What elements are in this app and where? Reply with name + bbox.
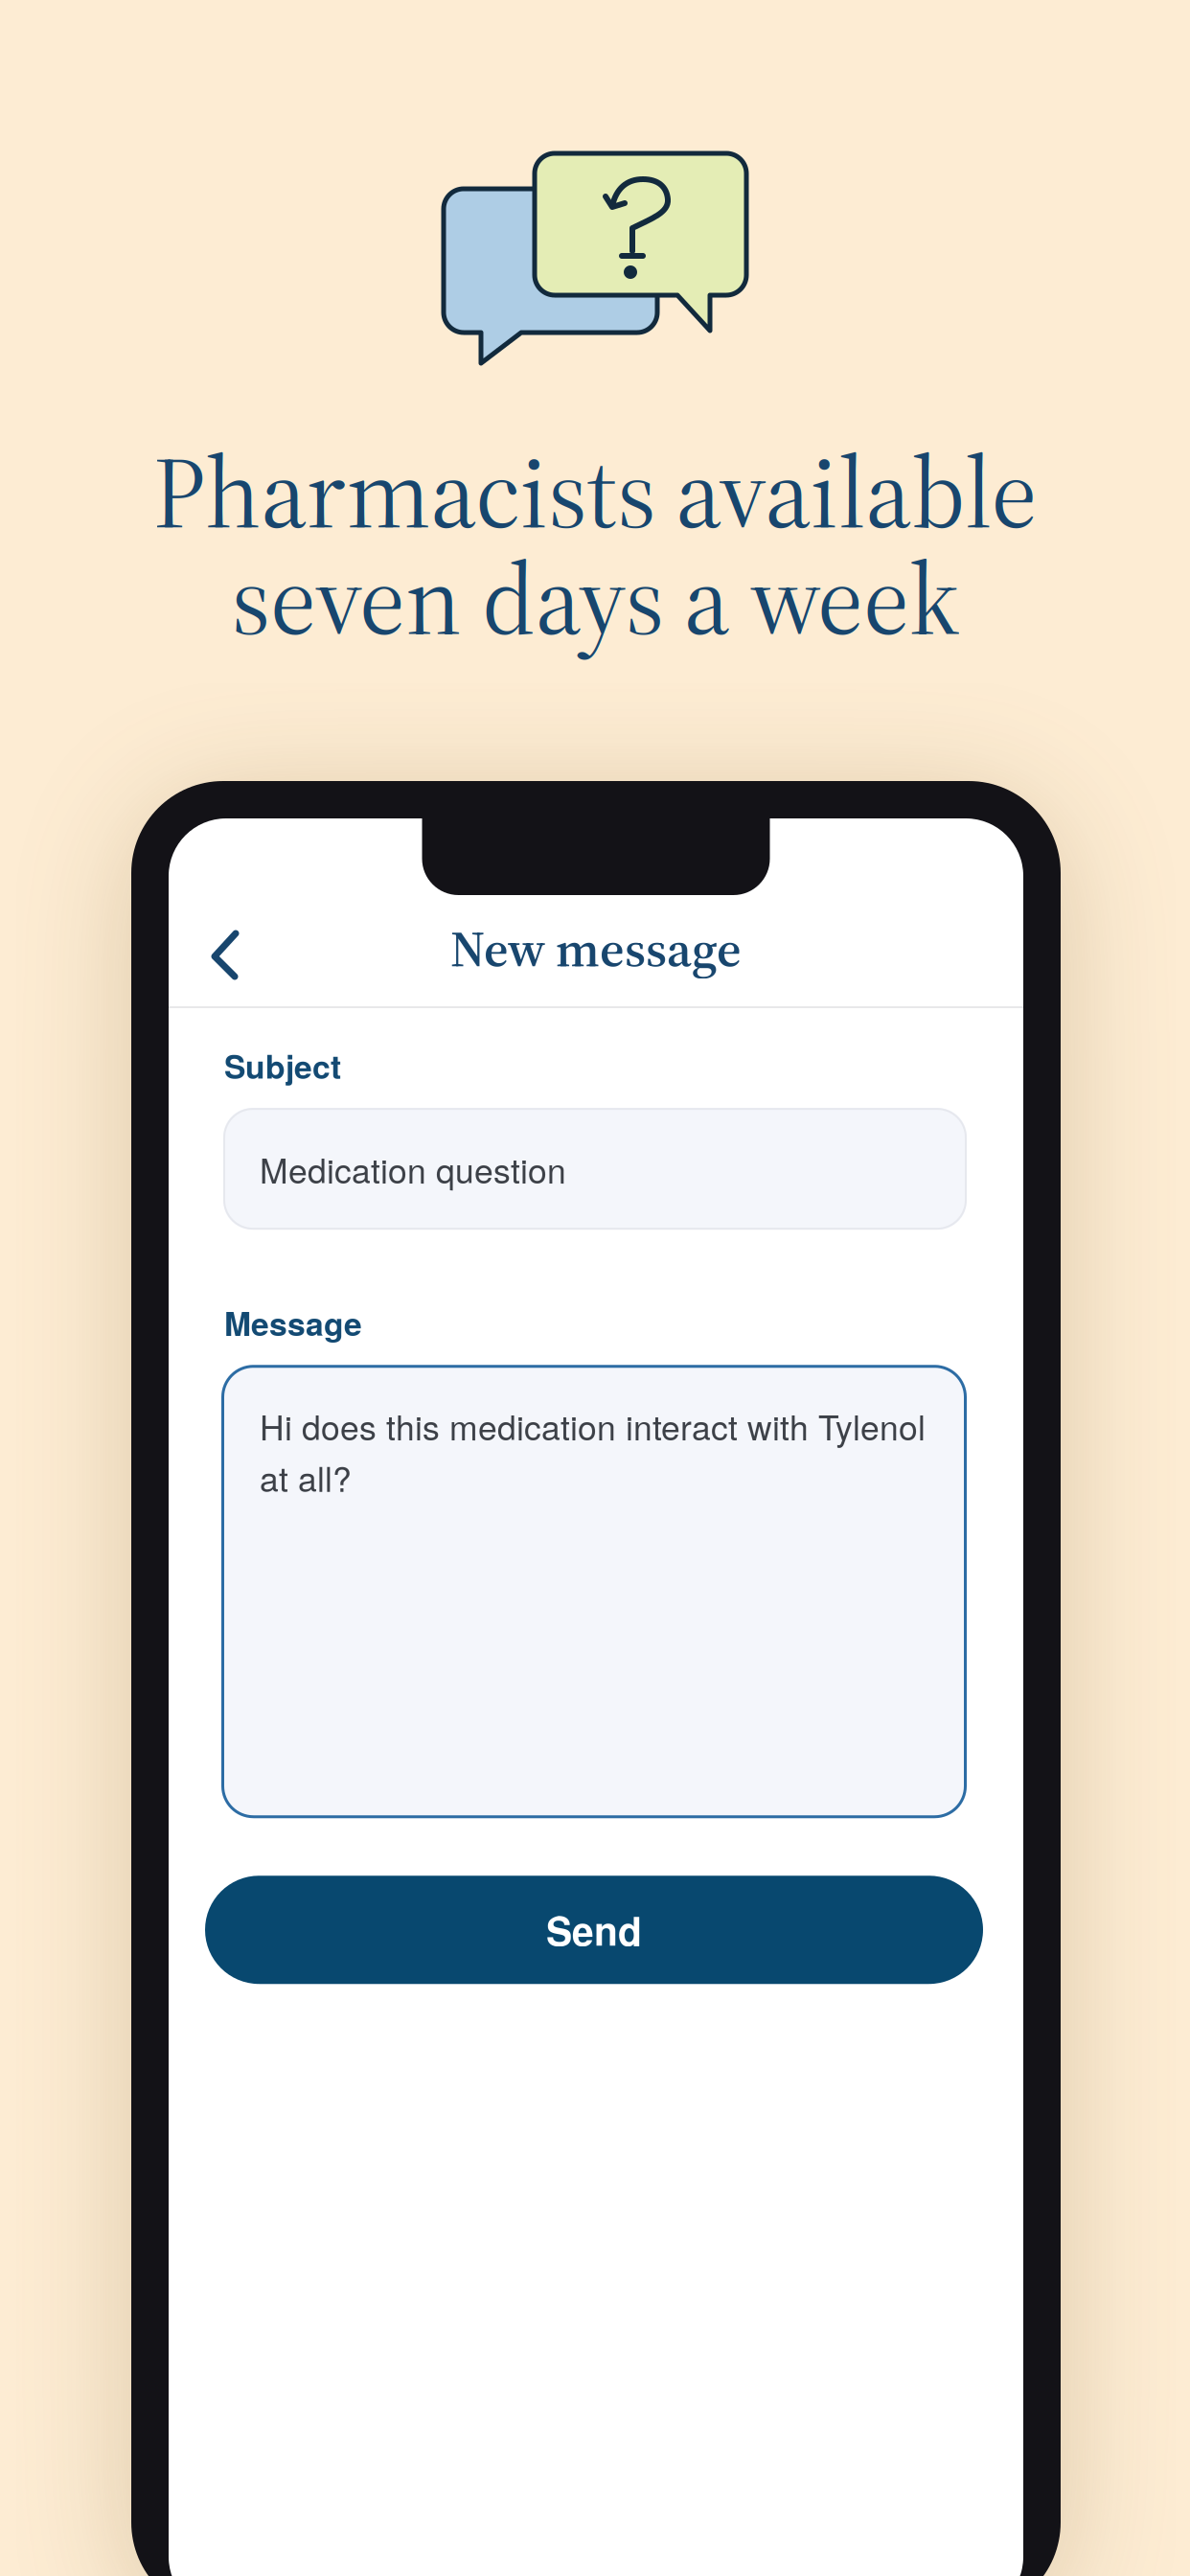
staticText: Send [546,1902,642,1958]
staticText: Message [224,1300,362,1346]
button[interactable]: Send [205,1876,983,1984]
staticText: Medication question [260,1144,566,1193]
staticText: seven days a week [231,529,959,668]
button[interactable]: Back [172,908,278,1000]
staticText: Hi does this medication interact with Ty… [260,1401,926,1502]
staticText: New message [450,914,742,983]
staticText: Pharmacists available [153,423,1037,561]
staticText: Subject [224,1043,341,1089]
